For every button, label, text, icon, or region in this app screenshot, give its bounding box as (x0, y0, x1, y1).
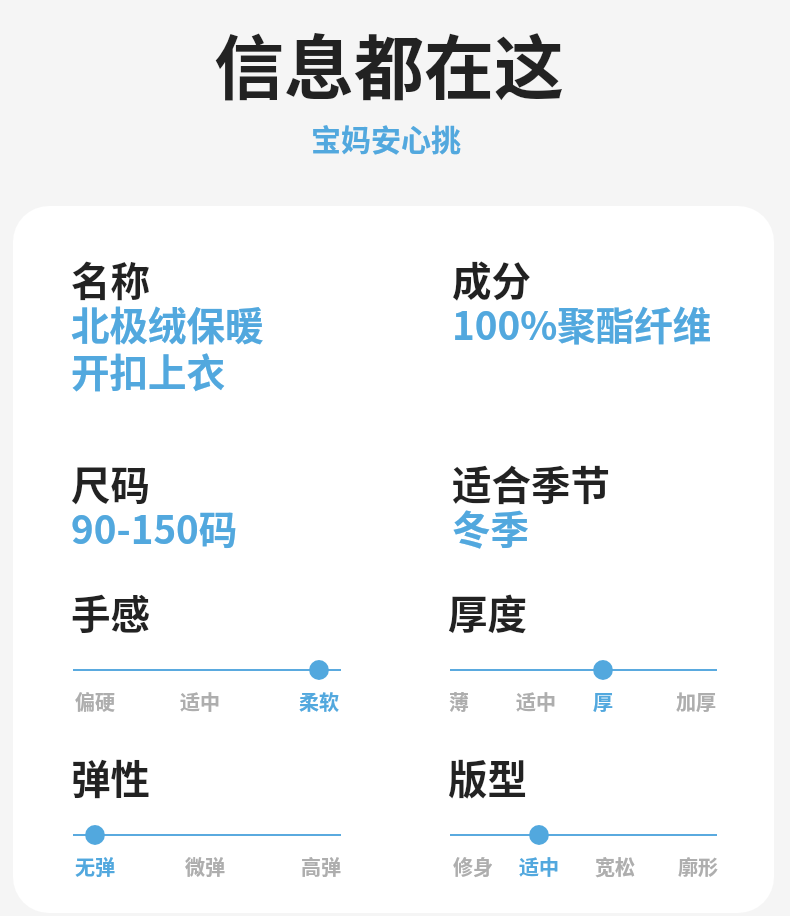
staticText: 加厚 (676, 687, 716, 716)
staticText: 版型 (448, 748, 527, 805)
button[interactable]: 手感：柔软 (73, 583, 341, 705)
staticText: 尺码 (71, 454, 150, 511)
staticText: 适中 (180, 687, 220, 716)
button[interactable]: 适合季节 (452, 454, 732, 554)
staticText: 修身 (453, 852, 493, 881)
staticText: 冬季 (452, 499, 530, 555)
staticText: 薄 (449, 687, 469, 716)
staticText: 廓形 (678, 852, 718, 881)
button[interactable]: 名称 (71, 250, 411, 410)
staticText: 100%聚酯纤维 (452, 295, 712, 351)
staticText: 适中 (516, 687, 556, 716)
button[interactable]: 厚度：厚 (450, 583, 717, 705)
button[interactable]: 成分 (452, 250, 732, 410)
staticText: 信息都在这 (0, 13, 784, 114)
staticText: 成分 (452, 250, 531, 307)
staticText: 弹性 (71, 748, 150, 805)
staticText: 适中 (519, 852, 559, 881)
staticText: 90-150码 (71, 499, 238, 555)
staticText: 宝妈安心挑 (0, 116, 781, 159)
staticText: 厚度 (448, 583, 527, 640)
staticText: 北极绒保暖 开扣上衣 (71, 295, 264, 399)
button[interactable]: 弹性：无弹 (73, 748, 341, 870)
staticText: 微弹 (185, 852, 225, 881)
staticText: 名称 (71, 250, 150, 307)
button[interactable]: 尺码 (71, 454, 411, 554)
staticText: 无弹 (75, 852, 115, 881)
staticText: 宽松 (595, 852, 635, 881)
button[interactable]: 版型：适中 (450, 748, 717, 870)
staticText: 柔软 (299, 687, 339, 716)
staticText: 适合季节 (452, 454, 610, 511)
staticText: 厚 (593, 687, 613, 716)
staticText: 偏硬 (75, 687, 115, 716)
staticText: 高弹 (301, 852, 341, 881)
staticText: 手感 (71, 583, 150, 640)
